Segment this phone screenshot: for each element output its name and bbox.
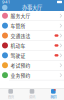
staticText: 办事大厅 bbox=[22, 4, 42, 11]
staticText: 交通违法 bbox=[10, 32, 30, 39]
button[interactable]: 考试预约 bbox=[0, 60, 64, 70]
staticText: 车管所 bbox=[10, 22, 25, 29]
button[interactable]: Profile bbox=[2, 5, 7, 10]
staticText: 机动车 bbox=[10, 42, 25, 49]
button[interactable]: 服务大厅 bbox=[0, 11, 64, 21]
button[interactable]: 机动车 bbox=[0, 41, 64, 51]
staticText: 驾驶证 bbox=[10, 52, 25, 59]
button[interactable]: 业务预约 bbox=[0, 70, 64, 80]
button[interactable]: 车管所 bbox=[0, 21, 64, 31]
staticText: 9:41 bbox=[2, 0, 10, 4]
staticText: 服务大厅 bbox=[10, 12, 30, 19]
button[interactable]: 驾驶证 bbox=[0, 51, 64, 60]
button[interactable]: 首页 bbox=[0, 89, 21, 99]
button[interactable]: 资讯 bbox=[21, 89, 43, 99]
button[interactable]: 交通违法 bbox=[0, 31, 64, 41]
staticText: 考试预约 bbox=[10, 62, 30, 69]
staticText: 我的 bbox=[50, 94, 56, 99]
staticText: 业务预约 bbox=[10, 72, 30, 79]
staticText: 首页 bbox=[8, 94, 14, 99]
staticText: 资讯 bbox=[29, 94, 35, 99]
button[interactable]: 我的 bbox=[43, 89, 64, 99]
